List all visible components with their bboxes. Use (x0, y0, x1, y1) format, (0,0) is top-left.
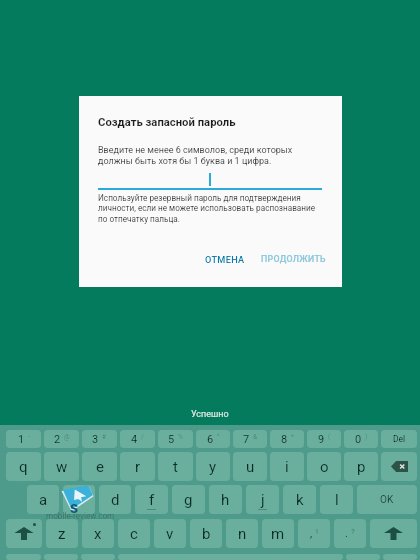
button[interactable]: Comma (44, 554, 78, 560)
staticText: s (75, 491, 83, 509)
staticText: h (221, 491, 230, 509)
staticText: o (320, 458, 329, 476)
staticText: 8 (281, 433, 288, 446)
staticText: n (238, 525, 247, 543)
staticText: b (202, 525, 211, 543)
staticText: # (102, 433, 107, 441)
staticText: 9 (318, 433, 325, 446)
button[interactable]: i (270, 452, 304, 481)
staticText: s (70, 498, 79, 517)
button[interactable]: 6 (196, 430, 230, 448)
button[interactable]: 1 (6, 430, 41, 448)
staticText: % (178, 433, 183, 441)
button[interactable]: Shift (370, 519, 417, 548)
button[interactable]: u (233, 452, 267, 481)
staticText: @ (64, 433, 70, 441)
staticText: a (39, 491, 48, 509)
button[interactable]: Enter (383, 554, 417, 560)
button[interactable]: l (320, 485, 353, 514)
button[interactable]: Symbols (6, 554, 41, 560)
button[interactable]: n (226, 519, 258, 548)
button[interactable]: d (99, 485, 131, 514)
button[interactable]: OK (357, 485, 417, 514)
staticText: e (96, 458, 104, 476)
button[interactable]: ПРОДОЛЖИТЬ (255, 248, 332, 270)
staticText: mobile-review.com (46, 511, 115, 521)
staticText: 4 (131, 433, 138, 446)
button[interactable]: k (283, 485, 316, 514)
staticText: / (141, 433, 144, 441)
button[interactable]: y (196, 452, 230, 481)
staticText: z (58, 525, 66, 543)
staticText: t (173, 458, 178, 476)
staticText: , (310, 527, 313, 540)
button[interactable]: e (82, 452, 117, 481)
staticText: j (261, 491, 265, 509)
staticText: ? (351, 527, 355, 536)
staticText: v (166, 525, 174, 543)
button[interactable]: 5 (158, 430, 193, 448)
button[interactable]: Del (381, 430, 417, 448)
button[interactable]: 8 (270, 430, 304, 448)
button[interactable]: g (172, 485, 205, 514)
staticText: * (291, 433, 294, 441)
button[interactable]: q (6, 452, 41, 481)
staticText: - (28, 433, 30, 441)
staticText: f (149, 491, 155, 509)
staticText: . (345, 527, 348, 540)
button[interactable]: 9 (307, 430, 341, 448)
staticText: 5 (168, 433, 175, 446)
button[interactable]: 3 (82, 430, 117, 448)
button[interactable]: x (82, 519, 114, 548)
button[interactable]: s (63, 485, 95, 514)
button[interactable]: w (44, 452, 79, 481)
button[interactable]: Language (81, 554, 115, 560)
staticText: Создать запасной пароль (98, 116, 236, 129)
button[interactable]: a (27, 485, 59, 514)
button[interactable]: . (334, 519, 366, 548)
staticText: Введите не менее 6 символов, среди котор… (98, 145, 293, 166)
button[interactable]: 4 (120, 430, 155, 448)
staticText: 2 (54, 433, 61, 446)
button[interactable]: h (209, 485, 242, 514)
button[interactable]: j (246, 485, 279, 514)
staticText: g (184, 491, 193, 509)
staticText: w (56, 458, 68, 476)
button[interactable]: Shift (6, 519, 42, 548)
staticText: p (357, 458, 366, 476)
button[interactable]: c (118, 519, 150, 548)
button[interactable]: v (154, 519, 186, 548)
button[interactable]: 2 (44, 430, 79, 448)
button[interactable]: b (190, 519, 222, 548)
staticText: 1 (18, 433, 25, 446)
staticText: ^ (217, 433, 220, 441)
button[interactable]: , (298, 519, 330, 548)
staticText: OK (380, 494, 394, 506)
button[interactable]: r (120, 452, 155, 481)
staticText: c (130, 525, 138, 543)
staticText: Используйте резервный пароль для подтвер… (98, 193, 316, 224)
button[interactable]: o (307, 452, 341, 481)
staticText: Del (393, 434, 406, 444)
staticText: x (94, 525, 102, 543)
staticText: y (209, 458, 217, 476)
staticText: k (296, 491, 304, 509)
staticText: & (253, 433, 258, 441)
button[interactable]: Period (346, 554, 380, 560)
button[interactable]: p (344, 452, 378, 481)
staticText: ОТМЕНА (205, 254, 245, 265)
button[interactable]: ОТМЕНА (199, 248, 251, 271)
button[interactable]: f (135, 485, 168, 514)
button[interactable]: m (262, 519, 294, 548)
button[interactable]: 7 (233, 430, 267, 448)
staticText: m (271, 525, 285, 543)
button[interactable]: t (158, 452, 193, 481)
staticText: ПРОДОЛЖИТЬ (261, 254, 326, 264)
button[interactable]: 0 (344, 430, 378, 448)
button[interactable]: Backspace (381, 452, 417, 481)
staticText: 7 (243, 433, 250, 446)
staticText: ! (316, 527, 319, 536)
button[interactable]: z (46, 519, 78, 548)
staticText: ( (328, 433, 331, 441)
